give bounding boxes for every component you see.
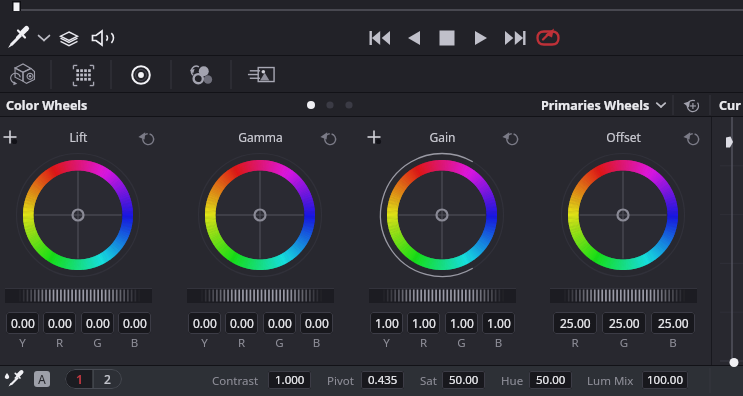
button[interactable]: 0.00 [225,312,258,334]
staticText: 1.00 [450,315,474,331]
staticText: 50.00 [536,372,566,388]
staticText: 0.00 [123,315,147,331]
button[interactable]: 1 [65,369,93,389]
button[interactable]: 0.00 [188,312,221,334]
staticText: 25.00 [560,315,591,331]
button[interactable]: Offset master wheel [550,288,697,303]
button[interactable]: Reset all [683,97,700,114]
button[interactable]: Magic mask [247,61,275,89]
button[interactable]: Timeline scrubber [0,0,743,11]
button[interactable]: Tracker [189,63,213,87]
staticText: G [602,335,646,351]
staticText: Offset [545,129,702,145]
button[interactable]: Lift color wheel [16,153,140,277]
button[interactable]: Qualifier [72,64,95,87]
staticText: 1.00 [412,315,436,331]
button[interactable]: Power window [130,64,152,86]
staticText: Sat [420,373,437,389]
staticText: 50.00 [449,372,479,388]
staticText: R [553,335,597,351]
staticText: 1.00 [487,315,511,331]
button[interactable]: Skip to start [368,26,392,50]
button[interactable]: Offset color wheel [561,153,685,277]
staticText: 100.00 [647,372,683,388]
button[interactable]: 25.00 [651,312,695,334]
button[interactable]: Gain [364,129,521,145]
button[interactable]: 0.00 [43,312,76,334]
staticText: 0.00 [193,315,217,331]
button[interactable]: Open wheels menu [654,98,668,112]
button[interactable]: Picker options [35,29,53,47]
staticText: Primaries Wheels [541,97,650,114]
button[interactable]: 0.00 [263,312,296,334]
staticText: Contrast [212,373,259,389]
button[interactable]: 25.00 [553,312,597,334]
button[interactable]: Audio [91,28,111,48]
staticText: Y [6,335,39,351]
button[interactable]: Pick Gain [365,128,385,148]
button[interactable]: 50.00 [529,371,572,389]
button[interactable]: Reset Offset [683,130,700,147]
button[interactable]: Pick Lift [1,128,21,148]
staticText: B [482,335,515,351]
staticText: A [38,371,46,387]
button[interactable]: Play reverse [403,27,425,49]
staticText: 0.00 [11,315,35,331]
button[interactable]: 50.00 [442,371,485,389]
button[interactable]: 1.00 [407,312,440,334]
button[interactable]: Lift master wheel [5,288,152,303]
button[interactable]: Reset Gain [502,130,519,147]
staticText: 0.00 [86,315,110,331]
button[interactable]: 25.00 [602,312,646,334]
button[interactable]: 1.00 [445,312,478,334]
staticText: G [445,335,478,351]
button[interactable]: Primaries Wheels [541,93,650,117]
staticText: Y [370,335,403,351]
button[interactable]: Reset Gamma [320,130,337,147]
staticText: 1 [76,371,83,387]
button[interactable]: 0.00 [118,312,151,334]
button[interactable]: 0.00 [81,312,114,334]
button[interactable]: 1.00 [370,312,403,334]
staticText: 1.000 [275,372,305,388]
button[interactable]: Color picker [5,25,31,51]
staticText: 0.00 [230,315,254,331]
button[interactable]: 100.00 [642,371,688,389]
button[interactable]: Lift [0,129,157,145]
button[interactable]: 0.00 [300,312,333,334]
staticText: R [407,335,440,351]
button[interactable]: Gamma master wheel [187,288,334,303]
button[interactable]: Stop [437,28,457,48]
button[interactable]: Curves panel [711,117,743,365]
button[interactable]: Play [470,27,492,49]
button[interactable]: Gamma [182,129,339,145]
button[interactable]: Gain color wheel [380,153,504,277]
staticText: 0.00 [305,315,329,331]
button[interactable]: Gain master wheel [369,288,516,303]
button[interactable]: Loop [536,26,560,50]
button[interactable]: Layers [59,28,79,48]
button[interactable]: 0.435 [361,371,404,389]
staticText: 25.00 [658,315,689,331]
staticText: 1.00 [375,315,399,331]
button[interactable]: Auto balance [34,371,50,387]
staticText: Hue [501,373,524,389]
button[interactable]: 1.000 [268,371,311,389]
button[interactable]: 0.00 [6,312,39,334]
button[interactable]: Reset Lift [138,130,155,147]
staticText: B [300,335,333,351]
staticText: 2 [104,371,111,387]
staticText: B [651,335,695,351]
staticText: Gain [364,129,521,145]
staticText: G [81,335,114,351]
staticText: Color Wheels [6,97,88,114]
button[interactable]: Skip to end [503,26,527,50]
button[interactable]: 2 [93,369,122,389]
button[interactable]: 1.00 [482,312,515,334]
staticText: 0.435 [368,372,398,388]
button[interactable]: 3D keyer [8,60,38,90]
staticText: Lift [0,129,157,145]
button[interactable]: Offset [545,129,702,145]
button[interactable]: Gamma color wheel [198,153,322,277]
button[interactable]: Color sample [2,367,26,391]
